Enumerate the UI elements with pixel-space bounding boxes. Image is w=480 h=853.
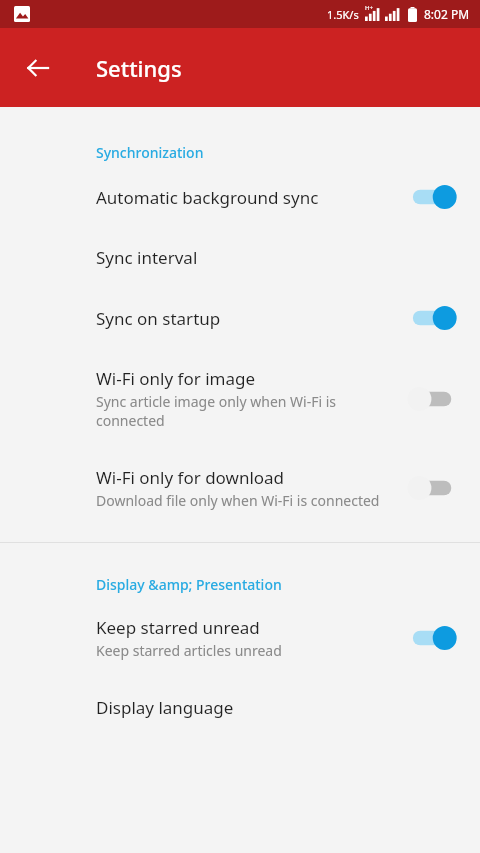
staticText: Display language: [96, 696, 234, 719]
staticText: Synchronization: [96, 143, 204, 162]
staticText: Keep starred articles unread: [96, 641, 282, 660]
button[interactable]: Automatic background sync: [0, 166, 480, 228]
button[interactable]: Wi-Fi only for image: [0, 349, 480, 448]
button[interactable]: Keep starred unread: [0, 598, 480, 678]
staticText: Settings: [96, 53, 182, 83]
staticText: Automatic background sync: [96, 186, 319, 209]
staticText: Wi-Fi only for image: [96, 367, 256, 390]
staticText: Sync on startup: [96, 307, 221, 330]
staticText: Display &amp; Presentation: [96, 575, 282, 594]
staticText: 1.5K/s: [327, 7, 359, 22]
button[interactable]: Wi-Fi only for download: [0, 448, 480, 528]
button[interactable]: Sync interval: [0, 228, 480, 287]
staticText: Sync interval: [96, 246, 198, 269]
staticText: Download file only when Wi-Fi is connect…: [96, 491, 380, 510]
staticText: Sync article image only when Wi-Fi is co…: [96, 392, 398, 430]
button[interactable]: Display language: [0, 678, 480, 737]
staticText: 8:02 PM: [424, 6, 470, 22]
staticText: Keep starred unread: [96, 616, 260, 639]
staticText: Wi-Fi only for download: [96, 466, 285, 489]
button[interactable]: Sync on startup: [0, 287, 480, 349]
button[interactable]: Back: [14, 44, 62, 92]
staticText: H+: [365, 4, 373, 12]
